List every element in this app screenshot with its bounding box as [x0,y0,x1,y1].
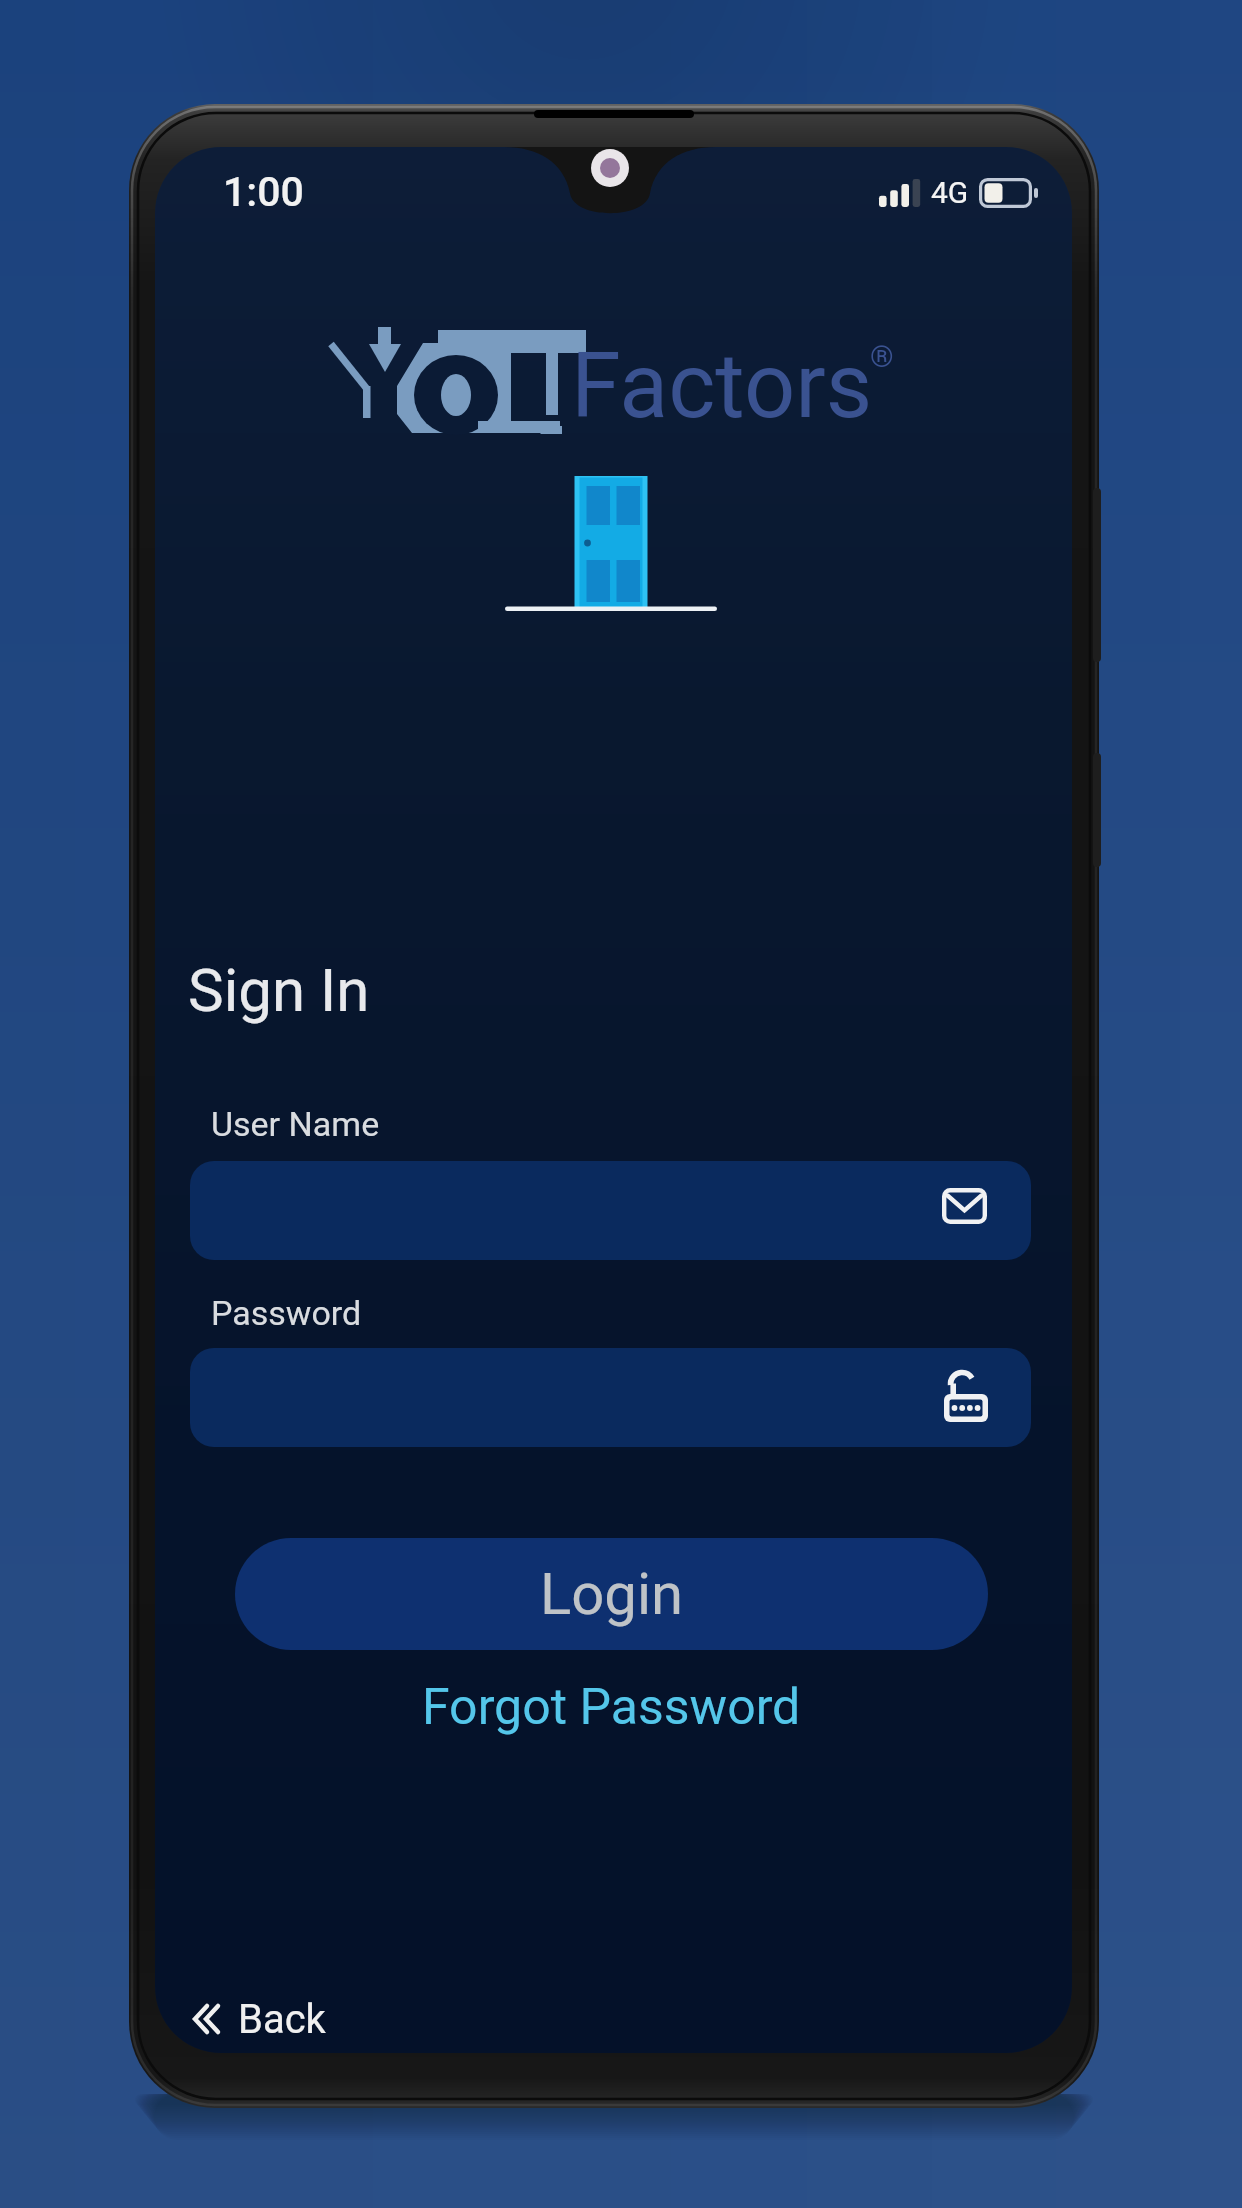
staticText: ® [870,339,894,374]
button[interactable]: Forgot Password [414,1670,808,1744]
staticText: Password [211,1293,362,1333]
staticText: User Name [211,1104,380,1144]
staticText: Forgot Password [422,1678,801,1737]
button[interactable]: Password field [190,1348,1031,1447]
button[interactable]: Login [235,1538,988,1650]
staticText: Factors [571,334,873,439]
staticText: Sign In [188,955,370,1025]
staticText: Back [238,1996,326,2043]
staticText: 1:00 [223,168,304,216]
staticText: Login [540,1560,684,1628]
staticText: 4G [931,175,969,210]
button[interactable]: User name field [190,1161,1031,1260]
button[interactable]: Back [192,1990,342,2048]
